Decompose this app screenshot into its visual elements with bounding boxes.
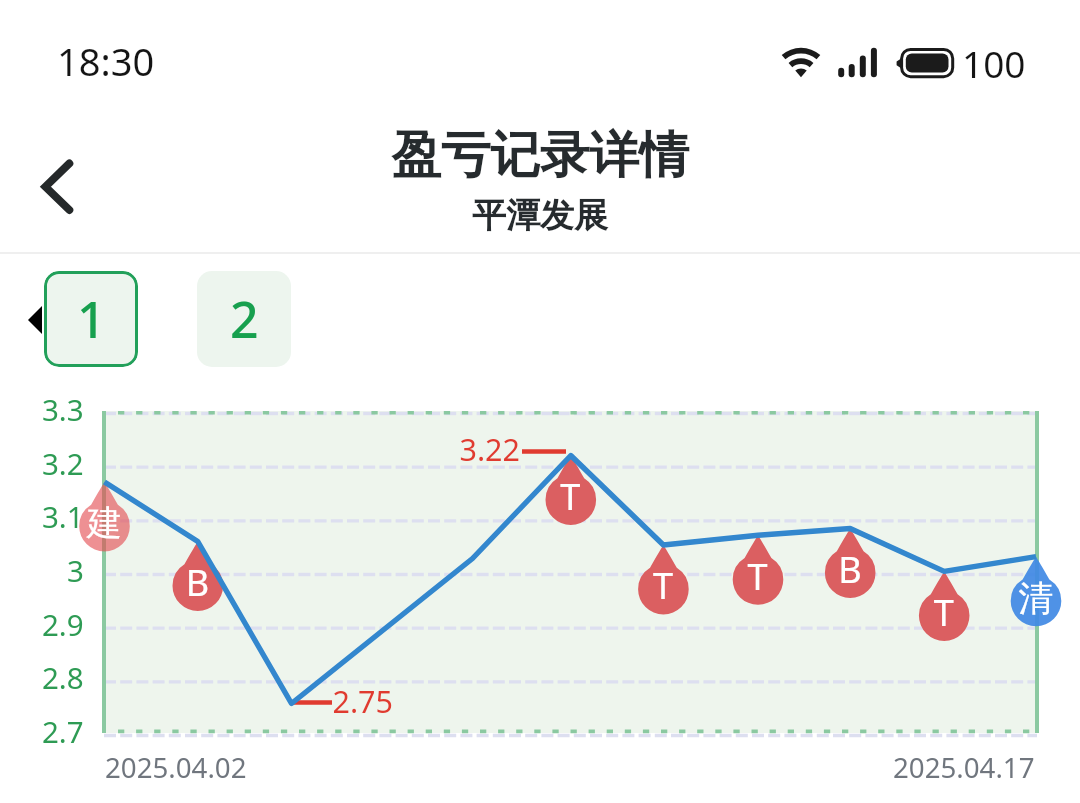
button[interactable]: Back xyxy=(18,146,98,228)
staticText: 1 xyxy=(77,285,106,353)
staticText: 2 xyxy=(230,285,259,353)
button[interactable]: Profit and loss chart xyxy=(104,411,1037,733)
button[interactable]: Previous page xyxy=(22,298,46,342)
button[interactable]: 1 xyxy=(44,271,138,367)
button[interactable]: 2 xyxy=(197,271,291,367)
